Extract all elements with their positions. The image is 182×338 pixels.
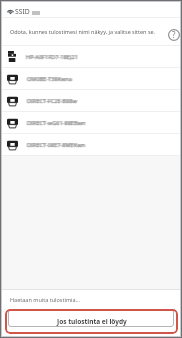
staticText: OM0BE-T38Kwna bbox=[27, 76, 72, 84]
staticText: DIRECT-08E7-8MEKwn bbox=[27, 141, 86, 149]
button[interactable]: DIRECT-wG61-88EBwn bbox=[2, 112, 180, 134]
staticText: OM0BE-T38Kwna bbox=[28, 75, 73, 83]
staticText: DIRECT-08E7-8MEKwn bbox=[27, 141, 86, 149]
staticText: DIRECT-wG61-88EBwn bbox=[27, 119, 86, 127]
staticText: HP-A0F1FD7-18EJ21 bbox=[26, 53, 78, 61]
staticText: DIRECT-FC2E-B88w bbox=[27, 98, 77, 106]
staticText: Odota, kunnes tulostimesi nimi näkyy, ja… bbox=[10, 28, 156, 35]
staticText: HP-A0F1FD7-18EJ21 bbox=[25, 53, 77, 61]
staticText: HP-A0F1FD7-18EJ21 bbox=[26, 54, 78, 62]
staticText: HP-A0F1FD7-18EJ21 bbox=[25, 53, 77, 61]
staticText: HP-A0F1FD7-18EJ21 bbox=[27, 53, 79, 61]
staticText: DIRECT-wG61-88EBwn bbox=[27, 119, 86, 127]
staticText: Haetaan muita tulostimia… bbox=[10, 296, 80, 303]
staticText: DIRECT-08E7-8MEKwn bbox=[28, 141, 87, 149]
staticText: HP-A0F1FD7-18EJ21 bbox=[26, 53, 78, 61]
button[interactable]: OM0BE-T38Kwna bbox=[2, 68, 180, 90]
staticText: DIRECT-wG61-88EBwn bbox=[27, 120, 86, 128]
button[interactable]: DIRECT-08E7-8MEKwn bbox=[2, 134, 180, 156]
staticText: DIRECT-08E7-8MEKwn bbox=[28, 141, 87, 149]
staticText: OM0BE-T38Kwna bbox=[27, 75, 72, 83]
staticText: DIRECT-wG61-88EBwn bbox=[28, 119, 87, 127]
staticText: DIRECT-08E7-8MEKwn bbox=[26, 141, 85, 149]
staticText: DIRECT-FC2E-B88w bbox=[26, 97, 76, 105]
staticText: DIRECT-FC2E-B88w bbox=[28, 97, 78, 105]
staticText: DIRECT-wG61-88EBwn bbox=[26, 119, 85, 127]
staticText: DIRECT-08E7-8MEKwn bbox=[26, 141, 85, 149]
staticText: DIRECT-wG61-88EBwn bbox=[28, 119, 87, 127]
staticText: OM0BE-T38Kwna bbox=[26, 75, 71, 83]
staticText: SSID bbox=[15, 7, 30, 16]
staticText: DIRECT-FC2E-B88w bbox=[26, 97, 76, 105]
button[interactable]: Jos tulostinta ei löydy bbox=[5, 309, 178, 334]
staticText: DIRECT-FC2E-B88w bbox=[28, 97, 78, 105]
staticText: DIRECT-FC2E-B88w bbox=[27, 97, 77, 105]
staticText: OM0BE-T38Kwna bbox=[27, 75, 72, 83]
button[interactable]: Help bbox=[167, 28, 180, 41]
staticText: DIRECT-08E7-8MEKwn bbox=[27, 142, 86, 150]
staticText: DIRECT-FC2E-B88w bbox=[27, 97, 77, 105]
staticText: ? bbox=[172, 29, 176, 40]
button[interactable]: DIRECT-FC2E-B88w bbox=[2, 90, 180, 112]
staticText: OM0BE-T38Kwna bbox=[28, 75, 73, 83]
staticText: OM0BE-T38Kwna bbox=[26, 75, 71, 83]
staticText: DIRECT-wG61-88EBwn bbox=[26, 119, 85, 127]
staticText: HP-A0F1FD7-18EJ21 bbox=[27, 53, 79, 61]
staticText: Jos tulostinta ei löydy bbox=[57, 317, 127, 326]
button[interactable]: HP-A0F1FD7-18EJ21 bbox=[2, 46, 180, 68]
